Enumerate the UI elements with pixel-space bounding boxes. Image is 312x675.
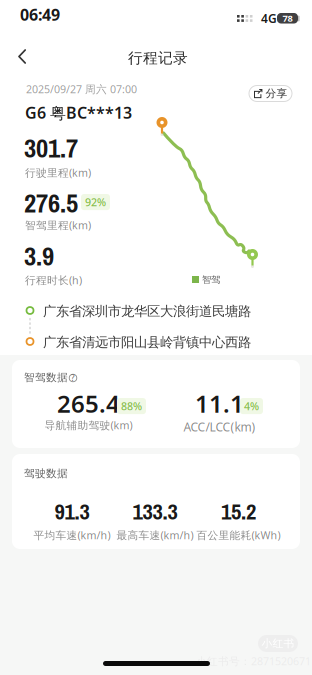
staticText: 平均车速(km/h) — [33, 528, 110, 542]
staticText: 行程记录 — [128, 49, 188, 67]
staticText: 行程时长(h) — [25, 273, 82, 287]
staticText: ACC/LCC(km) — [183, 419, 255, 435]
staticText: 91.3 — [54, 496, 89, 526]
staticText: 3.9 — [24, 238, 54, 274]
staticText: 导航辅助驾驶(km) — [44, 418, 132, 432]
staticText: G6 粤BC***13 — [25, 102, 132, 123]
staticText: 06:49 — [20, 4, 60, 25]
staticText: 133.3 — [132, 496, 177, 526]
staticText: 2025/09/27 周六 07:00 — [26, 82, 137, 96]
staticText: 301.7 — [24, 130, 78, 166]
button[interactable]: Back — [13, 46, 37, 67]
button[interactable]: 智驾数据说明 — [68, 373, 78, 383]
staticText: 智驾里程(km) — [25, 218, 91, 232]
staticText: 百公里能耗(kWh) — [196, 528, 280, 542]
staticText: 11.1 — [195, 387, 244, 419]
staticText: ? — [71, 373, 75, 383]
staticText: 4G — [261, 10, 277, 26]
staticText: 广东省深圳市龙华区大浪街道民塘路 — [43, 303, 251, 319]
staticText: 4% — [244, 399, 259, 413]
staticText: 92% — [85, 195, 106, 209]
staticText: 智驾 — [202, 274, 220, 285]
staticText: 15.2 — [221, 496, 256, 526]
staticText: 行驶里程(km) — [25, 165, 91, 180]
staticText: 小红书号：2871520671 — [196, 654, 311, 668]
staticText: 265.4 — [57, 387, 120, 419]
staticText: 小红书 — [261, 637, 294, 650]
staticText: 智驾数据 — [24, 371, 68, 384]
staticText: 驾驶数据 — [24, 467, 68, 480]
staticText: 分享 — [265, 87, 287, 100]
staticText: 88% — [121, 399, 142, 413]
staticText: 78 — [282, 12, 292, 24]
staticText: 广东省清远市阳山县岭背镇中心西路 — [43, 334, 251, 350]
staticText: 276.5 — [24, 185, 78, 221]
button[interactable]: 分享 — [249, 85, 292, 101]
staticText: 最高车速(km/h) — [116, 528, 193, 542]
